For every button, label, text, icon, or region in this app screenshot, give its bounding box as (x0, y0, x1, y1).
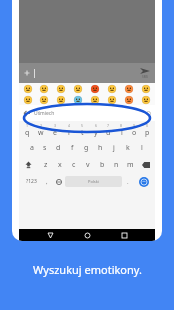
staticText: p (145, 128, 150, 138)
staticText: a (30, 143, 34, 153)
staticText: SMS (142, 75, 149, 79)
staticText: f (71, 143, 74, 153)
button[interactable] (103, 95, 120, 105)
button[interactable]: k (121, 139, 135, 156)
other: Clear (146, 111, 151, 116)
button[interactable]: Change language (53, 173, 65, 190)
button[interactable]: 6 (89, 122, 102, 138)
staticText: o (132, 128, 137, 138)
button[interactable]: s (38, 139, 51, 156)
button[interactable] (20, 84, 36, 94)
button[interactable]: 1 (20, 122, 34, 138)
button[interactable]: d (51, 139, 65, 156)
staticText: , (46, 178, 48, 186)
staticText: j (113, 143, 115, 153)
button[interactable]: Emoji (134, 173, 153, 190)
button[interactable] (69, 95, 86, 105)
button[interactable]: Home (81, 229, 93, 241)
button[interactable] (36, 95, 52, 105)
button[interactable]: 8 (115, 122, 128, 138)
staticText: h (98, 143, 103, 153)
staticText: c (72, 160, 76, 170)
button[interactable]: n (109, 156, 123, 173)
button[interactable]: Recent apps (118, 229, 130, 241)
staticText: 5 (81, 123, 84, 128)
button[interactable]: 9 (128, 122, 141, 138)
staticText: l (141, 143, 143, 153)
button[interactable]: . (122, 173, 134, 190)
button[interactable]: 0 (141, 122, 154, 138)
button[interactable]: 2 (34, 122, 48, 138)
staticText: 3 (54, 123, 57, 128)
button[interactable]: Add attachment (19, 63, 155, 83)
staticText: ?123 (26, 178, 37, 185)
button[interactable]: 7 (102, 122, 115, 138)
button[interactable]: , (41, 173, 53, 190)
staticText: n (114, 160, 119, 170)
other: Add attachment (23, 69, 31, 77)
staticText: b (100, 160, 105, 170)
button[interactable]: 4 (62, 122, 76, 138)
button[interactable] (52, 95, 69, 105)
button[interactable]: f (65, 139, 79, 156)
button[interactable] (120, 84, 137, 94)
staticText: 6 (95, 123, 98, 128)
staticText: w (38, 128, 44, 138)
button[interactable] (36, 84, 52, 94)
staticText: Polski (88, 179, 99, 184)
staticText: v (86, 160, 90, 170)
staticText: s (43, 143, 47, 153)
staticText: q (25, 128, 30, 138)
button[interactable]: ?123 (21, 173, 41, 190)
button[interactable] (120, 95, 137, 105)
button[interactable]: l (135, 139, 149, 156)
button[interactable]: g (79, 139, 93, 156)
button[interactable] (86, 95, 103, 105)
staticText: i (121, 128, 123, 138)
staticText: Wyszukuj emotikony. (33, 262, 142, 277)
staticText: m (127, 160, 134, 170)
button[interactable]: Polski (65, 176, 122, 187)
button[interactable] (86, 84, 103, 94)
other: Back (23, 110, 30, 117)
button[interactable]: x (53, 156, 67, 173)
staticText: 2 (40, 123, 43, 128)
button[interactable]: Shift (19, 156, 38, 173)
button[interactable] (103, 84, 120, 94)
staticText: r (68, 128, 71, 138)
button[interactable]: h (93, 139, 107, 156)
staticText: 9 (133, 123, 136, 128)
staticText: 7 (107, 123, 110, 128)
button[interactable]: 5 (76, 122, 89, 138)
button[interactable] (20, 95, 36, 105)
button[interactable]: Backspace (137, 156, 155, 173)
button[interactable]: Back (19, 105, 155, 121)
button[interactable]: j (107, 139, 121, 156)
button[interactable]: Back (44, 229, 56, 241)
staticText: Uśmiech (34, 110, 55, 117)
button[interactable]: m (123, 156, 137, 173)
button[interactable]: 3 (48, 122, 62, 138)
staticText: e (53, 128, 57, 138)
button[interactable]: a (25, 139, 38, 156)
staticText: 0 (146, 123, 149, 128)
staticText: 1 (26, 123, 29, 128)
button[interactable]: c (67, 156, 81, 173)
staticText: u (106, 128, 111, 138)
button[interactable] (52, 84, 69, 94)
button[interactable] (69, 84, 86, 94)
staticText: k (126, 143, 130, 153)
staticText: g (84, 143, 89, 153)
button[interactable] (137, 84, 154, 94)
button[interactable]: Send SMS (140, 68, 150, 79)
button[interactable]: v (81, 156, 95, 173)
button[interactable] (137, 95, 154, 105)
staticText: y (94, 128, 98, 138)
staticText: . (127, 178, 129, 186)
staticText: z (44, 160, 48, 170)
button[interactable]: b (95, 156, 109, 173)
staticText: d (56, 143, 61, 153)
button[interactable]: z (38, 156, 53, 173)
staticText: x (58, 160, 62, 170)
staticText: t (81, 128, 84, 138)
